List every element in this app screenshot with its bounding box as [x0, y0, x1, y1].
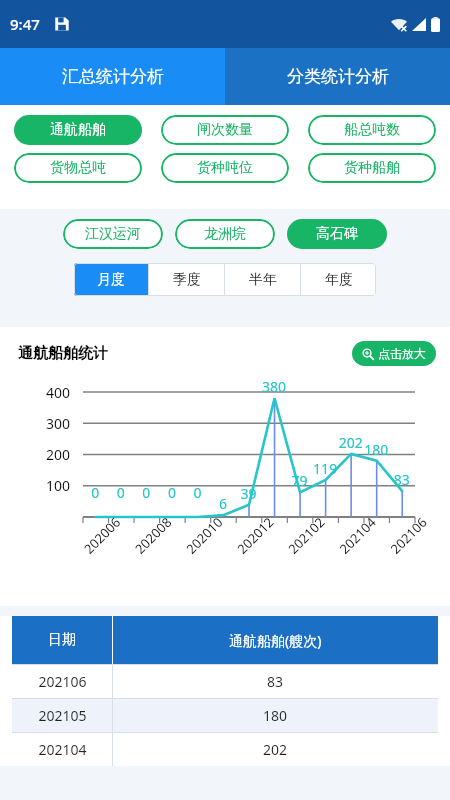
staticText: 202	[263, 740, 288, 759]
staticText: 汇总统计分析	[62, 66, 164, 87]
staticText: 通航船舶统计	[18, 344, 108, 363]
button[interactable]: 江汉运河	[63, 219, 163, 249]
staticText: 日期	[48, 631, 76, 649]
staticText: 202104	[38, 740, 87, 759]
staticText: 年度	[325, 271, 353, 289]
staticText: 202106	[38, 672, 87, 691]
staticText: 83	[267, 672, 284, 691]
staticText: 船总吨数	[344, 121, 400, 139]
staticText: 货物总吨	[50, 159, 106, 177]
button[interactable]: 半年	[225, 263, 300, 296]
staticText: 货种船舶	[344, 159, 400, 177]
button[interactable]: 高石碑	[287, 219, 387, 249]
button[interactable]: 闸次数量	[161, 115, 289, 145]
staticText: 点击放大	[378, 346, 426, 361]
staticText: 半年	[249, 271, 277, 289]
button[interactable]: 点击放大	[352, 341, 436, 366]
button[interactable]: 季度	[149, 263, 224, 296]
staticText: 闸次数量	[197, 121, 253, 139]
button[interactable]: 货物总吨	[14, 153, 142, 183]
button[interactable]: 202106	[12, 665, 438, 698]
button[interactable]: 船总吨数	[308, 115, 436, 145]
staticText: 龙洲垸	[204, 225, 246, 243]
staticText: 高石碑	[316, 225, 358, 243]
button[interactable]: 龙洲垸	[175, 219, 275, 249]
staticText: 180	[263, 706, 288, 725]
button[interactable]: 分类统计分析	[225, 48, 450, 105]
button[interactable]: 货种吨位	[161, 153, 289, 183]
button[interactable]: 货种船舶	[308, 153, 436, 183]
button[interactable]: 汇总统计分析	[0, 48, 225, 105]
staticText: 分类统计分析	[287, 66, 389, 87]
staticText: 货种吨位	[197, 159, 253, 177]
button[interactable]: 月度	[74, 263, 148, 296]
staticText: 季度	[173, 271, 201, 289]
button[interactable]: 202104	[12, 733, 438, 766]
staticText: 月度	[97, 271, 125, 289]
staticText: 9:47	[10, 14, 40, 34]
button[interactable]: 通航船舶	[14, 115, 142, 145]
staticText: 江汉运河	[85, 225, 141, 243]
button[interactable]: 年度	[301, 263, 376, 296]
staticText: 202105	[38, 706, 87, 725]
staticText: 通航船舶(艘次)	[229, 631, 322, 650]
button[interactable]: 202105	[12, 699, 438, 732]
staticText: 通航船舶	[50, 121, 106, 139]
